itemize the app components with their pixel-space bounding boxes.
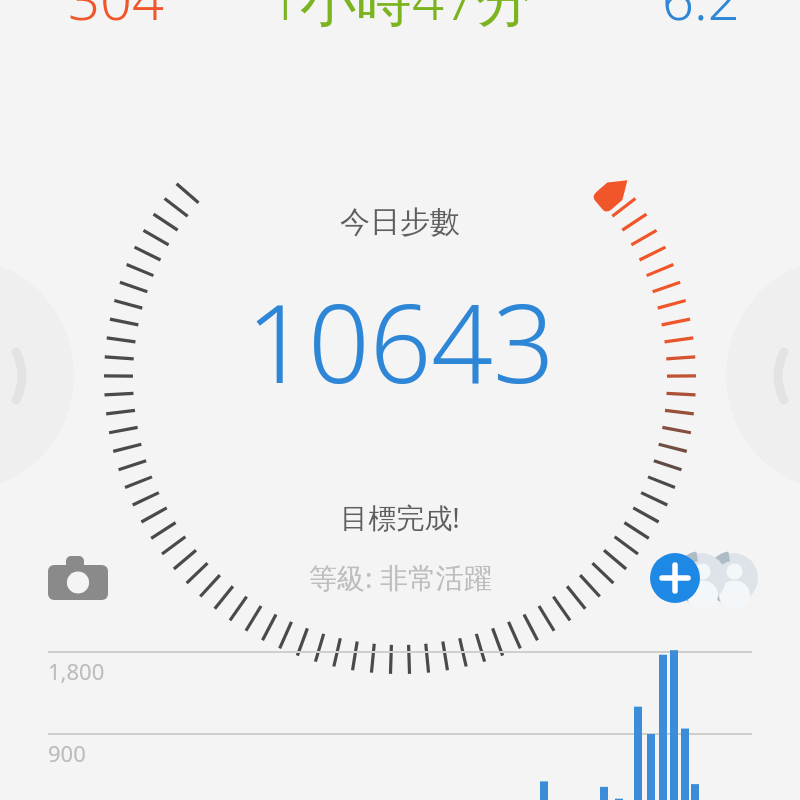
staticText: 6.2: [662, 0, 740, 36]
staticText: 900: [48, 738, 86, 768]
staticText: 1,800: [48, 656, 105, 686]
staticText: 等級: 非常活躍: [309, 558, 492, 596]
staticText: 304: [68, 0, 164, 36]
staticText: 1小時47分: [268, 0, 532, 36]
staticText: 今日步數: [340, 203, 460, 241]
staticText: 目標完成!: [340, 498, 460, 536]
button[interactable]: Add friend: [648, 552, 760, 604]
staticText: 10643: [246, 268, 555, 415]
button[interactable]: Camera: [48, 554, 108, 604]
